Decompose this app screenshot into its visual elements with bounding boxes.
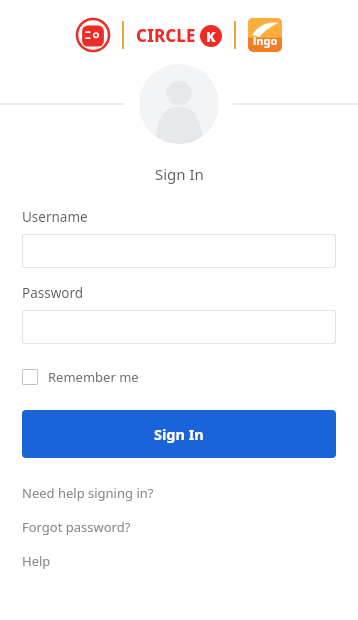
staticText: Remember me bbox=[48, 368, 139, 386]
button[interactable]: Remember me bbox=[22, 366, 139, 388]
button[interactable]: Need help signing in? bbox=[22, 484, 336, 502]
staticText: Username bbox=[22, 208, 88, 226]
button[interactable]: Sign In bbox=[22, 410, 336, 458]
button[interactable]: Help bbox=[22, 552, 336, 570]
staticText: Password bbox=[22, 284, 84, 302]
other: Circle K bbox=[136, 24, 222, 47]
other: Ingo Money bbox=[248, 18, 282, 52]
other: Circle K 20 logo bbox=[76, 18, 110, 52]
button[interactable] bbox=[22, 310, 336, 344]
button[interactable] bbox=[22, 234, 336, 268]
staticText: Sign In bbox=[155, 164, 204, 184]
staticText: Need help signing in? bbox=[22, 484, 154, 502]
staticText: ingo bbox=[253, 33, 278, 48]
staticText: Help bbox=[22, 552, 51, 570]
staticText: Sign In bbox=[154, 424, 204, 444]
staticText: K bbox=[206, 27, 216, 46]
button[interactable]: Forgot password? bbox=[22, 518, 336, 536]
staticText: Forgot password? bbox=[22, 518, 131, 536]
staticText: CIRCLE bbox=[136, 24, 196, 47]
